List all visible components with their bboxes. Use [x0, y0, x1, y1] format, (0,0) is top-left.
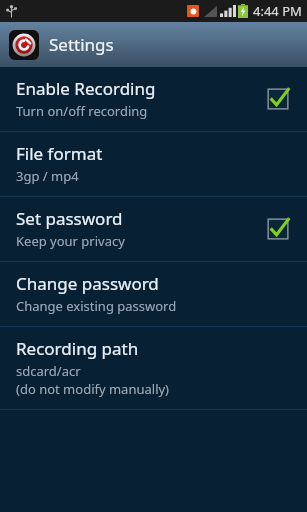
- button[interactable]: Enable Recording: [0, 67, 307, 131]
- button[interactable]: Change password: [0, 262, 307, 326]
- button[interactable]: Set password: [0, 197, 307, 261]
- button[interactable]: Recording path: [0, 327, 307, 409]
- staticText: Turn on/off recording: [16, 102, 148, 120]
- staticText: Recording path: [16, 337, 139, 360]
- staticText: Change existing password: [16, 297, 177, 315]
- button[interactable]: File format: [0, 132, 307, 196]
- staticText: (do not modify manually): [16, 380, 170, 398]
- staticText: 3gp / mp4: [16, 167, 79, 185]
- staticText: Keep your privacy: [16, 232, 125, 250]
- staticText: Enable Recording: [16, 77, 156, 100]
- button[interactable]: Toggle: [263, 214, 293, 244]
- button[interactable]: Settings: [0, 22, 307, 67]
- staticText: Change password: [16, 272, 159, 295]
- staticText: sdcard/acr: [16, 362, 81, 380]
- button[interactable]: Toggle: [263, 84, 293, 114]
- staticText: Set password: [16, 207, 123, 230]
- staticText: 4:44 PM: [253, 2, 302, 20]
- staticText: File format: [16, 142, 103, 165]
- staticText: Settings: [49, 33, 114, 56]
